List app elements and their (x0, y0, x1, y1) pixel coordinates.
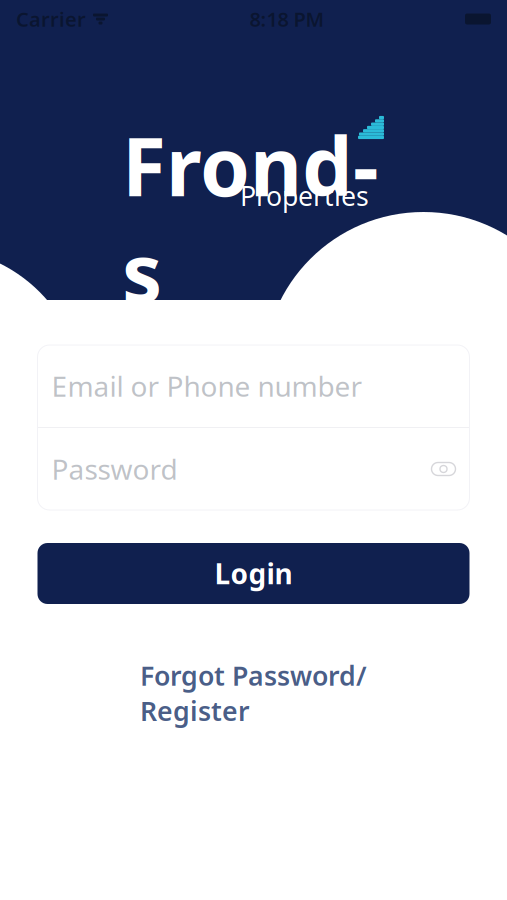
button[interactable]: Email or Phone number (37, 345, 469, 427)
staticText: Carrier (16, 6, 86, 32)
staticText: Password (51, 450, 177, 488)
staticText: Login (214, 555, 292, 592)
button[interactable]: Login (37, 543, 469, 604)
button[interactable]: Password (37, 428, 469, 510)
staticText: Email or Phone number (51, 367, 362, 405)
staticText: Fronds (122, 112, 379, 324)
staticText: Properties (240, 178, 369, 213)
staticText: 8:18 PM (249, 6, 324, 32)
staticText: Forgot Password/Register (140, 658, 367, 728)
button[interactable]: Forgot Password/Register (103, 676, 403, 710)
